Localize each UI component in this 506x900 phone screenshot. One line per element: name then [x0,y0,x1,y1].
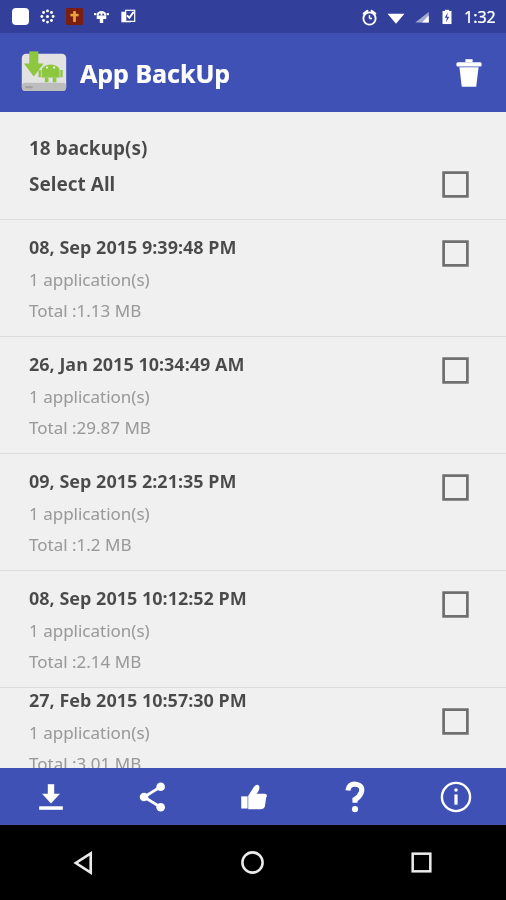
button[interactable]: Share [102,768,203,825]
button[interactable]: Checkbox [442,171,469,198]
staticText: 1 application(s) [29,502,150,525]
staticText: Select All [29,171,116,197]
staticText: 1 application(s) [29,268,150,291]
staticText: Total :3.01 MB [29,752,142,768]
staticText: 09, Sep 2015 2:21:35 PM [29,469,237,494]
staticText: Total :29.87 MB [29,416,151,439]
staticText: App BackUp [80,56,231,90]
button[interactable]: 09, Sep 2015 2:21:35 PM [0,454,506,570]
button[interactable]: Checkbox [442,474,469,501]
button[interactable]: 08, Sep 2015 9:39:48 PM [0,220,506,336]
button[interactable]: Home [168,825,337,900]
button[interactable]: Backup [0,768,102,825]
button[interactable]: Help [304,768,405,825]
button[interactable]: Checkbox [442,591,469,618]
button[interactable]: 26, Jan 2015 10:34:49 AM [0,337,506,453]
button[interactable]: Checkbox [442,240,469,267]
button[interactable]: Checkbox [442,357,469,384]
button[interactable]: 27, Feb 2015 10:57:30 PM [0,688,506,768]
staticText: 1 application(s) [29,721,150,744]
staticText: 08, Sep 2015 9:39:48 PM [29,235,237,260]
staticText: 27, Feb 2015 10:57:30 PM [29,688,247,713]
staticText: 08, Sep 2015 10:12:52 PM [29,586,247,611]
staticText: Total :1.13 MB [29,299,142,322]
staticText: 18 backup(s) [29,135,148,161]
staticText: 1 application(s) [29,385,150,408]
staticText: Total :2.14 MB [29,650,142,673]
button[interactable]: Checkbox [442,708,469,735]
button[interactable]: Back [0,825,168,900]
staticText: Total :1.2 MB [29,533,132,556]
button[interactable]: Rate [203,768,304,825]
button[interactable]: 08, Sep 2015 10:12:52 PM [0,571,506,687]
button[interactable]: About [405,768,506,825]
staticText: 1 application(s) [29,619,150,642]
button[interactable]: 18 backup(s) [0,112,506,219]
staticText: 26, Jan 2015 10:34:49 AM [29,352,245,377]
staticText: 1:32 [464,6,496,28]
button[interactable]: Delete [446,50,492,96]
button[interactable]: Recents [337,825,506,900]
